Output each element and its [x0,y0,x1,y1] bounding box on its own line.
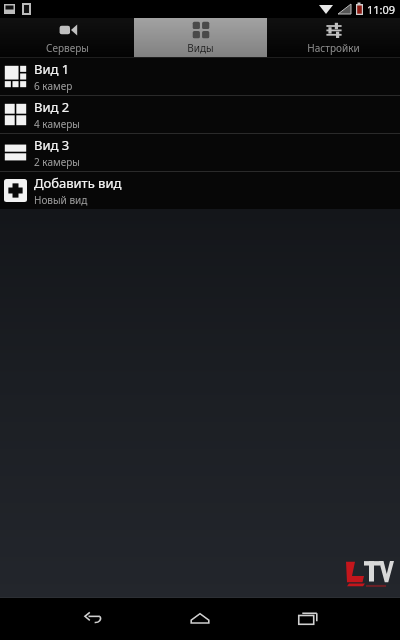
staticText: Добавить вид [34,174,122,192]
button[interactable]: Добавить вид [0,172,400,209]
staticText: Вид 1 [34,60,70,78]
staticText: Вид 2 [34,98,70,116]
button[interactable]: Вид 2 [0,96,400,133]
staticText: Виды [187,41,214,55]
button[interactable]: Настройки [267,18,400,57]
staticText: 2 камеры [34,155,80,169]
button[interactable]: Recent apps [284,597,332,640]
button[interactable]: Back [68,597,116,640]
staticText: 4 камеры [34,117,80,131]
button[interactable]: Home [176,597,224,640]
staticText: Серверы [46,41,89,55]
staticText: Новый вид [34,193,88,207]
staticText: Вид 3 [34,136,70,154]
button[interactable]: Вид 1 [0,58,400,95]
staticText: 6 камер [34,79,73,93]
button[interactable]: Серверы [0,18,134,57]
button[interactable]: Виды [134,18,267,57]
staticText: Настройки [307,41,360,55]
button[interactable]: Вид 3 [0,134,400,171]
staticText: 11:09 [367,2,396,17]
